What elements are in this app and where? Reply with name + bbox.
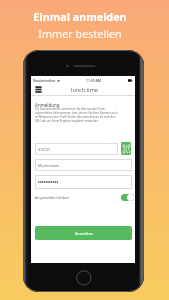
- button[interactable]: QR-Code scannen: [121, 142, 131, 155]
- button[interactable]: Menü: [34, 85, 43, 94]
- button[interactable]: Anmelden: [35, 226, 132, 240]
- staticText: Anmelden: [75, 231, 93, 236]
- staticText: Anmeldung: [35, 102, 60, 108]
- button[interactable]: Mustermann: [35, 159, 132, 171]
- button[interactable]: 410723: [35, 143, 118, 155]
- button[interactable]: Angemeldet bleiben: [35, 193, 134, 202]
- button[interactable]: [35, 175, 132, 189]
- staticText: 410723: [38, 147, 51, 152]
- staticText: lunch.time: [71, 86, 98, 93]
- staticText: Angemeldet bleiben: [35, 195, 70, 200]
- staticText: Netzbetreiber: [33, 78, 56, 83]
- staticText: Mustermann: [38, 163, 60, 168]
- staticText: Einmal anmelden: [33, 9, 127, 24]
- staticText: Die Standortnummer entnehmen Sie bitte a…: [35, 107, 118, 123]
- staticText: Immer bestellen: [38, 26, 122, 41]
- staticText: 11:50 AM: [86, 78, 101, 83]
